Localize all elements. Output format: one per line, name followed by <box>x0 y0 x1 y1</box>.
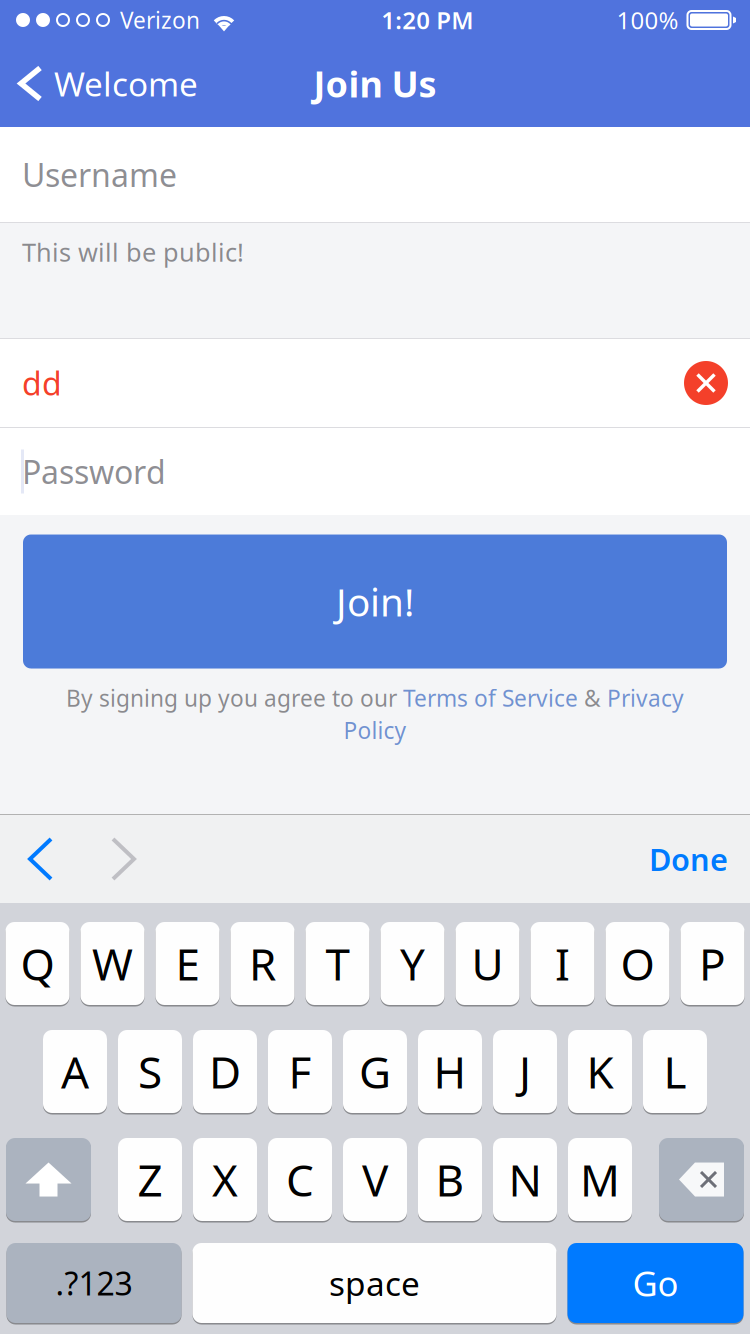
staticText: Password <box>22 450 166 493</box>
staticText: Go <box>632 1260 678 1306</box>
staticText: Z <box>137 1150 162 1209</box>
staticText: R <box>249 934 276 993</box>
staticText: Done <box>649 839 728 879</box>
button[interactable]: Clear text <box>684 361 728 405</box>
button[interactable]: Policy <box>343 715 406 745</box>
button[interactable]: Y <box>380 922 444 1005</box>
staticText: Terms of Service <box>403 683 578 713</box>
button[interactable]: I <box>530 922 594 1005</box>
button[interactable]: space <box>192 1243 556 1323</box>
staticText: Privacy <box>607 683 684 713</box>
staticText: X <box>212 1150 238 1209</box>
button[interactable]: U <box>455 922 519 1005</box>
staticText: Verizon <box>120 5 200 35</box>
button[interactable]: R <box>230 922 294 1005</box>
staticText: W <box>92 934 133 993</box>
staticText: .?123 <box>55 1262 132 1304</box>
button[interactable]: J <box>493 1030 557 1113</box>
staticText: J <box>519 1042 531 1101</box>
button[interactable]: G <box>343 1030 407 1113</box>
button[interactable]: P <box>680 922 744 1005</box>
staticText: U <box>471 934 503 993</box>
button[interactable]: Go <box>567 1243 743 1323</box>
button[interactable]: F <box>268 1030 332 1113</box>
button[interactable]: Previous field <box>0 815 92 903</box>
staticText: This will be public! <box>22 235 244 269</box>
staticText: A <box>61 1042 89 1101</box>
button[interactable]: .?123 <box>6 1243 181 1323</box>
staticText: O <box>620 934 654 993</box>
staticText: V <box>362 1150 388 1209</box>
button[interactable]: Terms of Service <box>403 683 578 713</box>
staticText: & <box>578 683 607 713</box>
button[interactable]: D <box>193 1030 257 1113</box>
staticText: K <box>586 1042 613 1101</box>
button[interactable]: Done <box>627 815 750 903</box>
button[interactable]: Z <box>118 1138 182 1221</box>
button[interactable]: Next field <box>92 815 155 903</box>
staticText: By signing up you agree to our <box>66 683 403 713</box>
staticText: Q <box>20 934 54 993</box>
staticText: N <box>508 1150 541 1209</box>
staticText: 1:20 PM <box>381 4 473 36</box>
button[interactable]: H <box>418 1030 482 1113</box>
staticText: F <box>288 1042 311 1101</box>
staticText: space <box>329 1261 420 1305</box>
button[interactable]: T <box>305 922 369 1005</box>
staticText: M <box>580 1150 620 1209</box>
button[interactable]: Shift <box>6 1138 91 1221</box>
staticText: B <box>435 1150 464 1209</box>
button[interactable]: B <box>418 1138 482 1221</box>
button[interactable]: V <box>343 1138 407 1221</box>
button[interactable]: M <box>568 1138 632 1221</box>
staticText: Join Us <box>313 60 436 107</box>
staticText: 100% <box>616 4 678 36</box>
staticText: Welcome <box>54 61 198 106</box>
button[interactable]: W <box>80 922 144 1005</box>
button[interactable]: S <box>118 1030 182 1113</box>
staticText: L <box>663 1042 686 1101</box>
staticText: T <box>325 934 349 993</box>
button[interactable]: X <box>193 1138 257 1221</box>
button[interactable]: Q <box>5 922 69 1005</box>
button[interactable]: O <box>605 922 669 1005</box>
staticText: S <box>138 1042 162 1101</box>
staticText: P <box>699 934 726 993</box>
staticText: H <box>433 1042 466 1101</box>
button[interactable]: L <box>643 1030 707 1113</box>
staticText: E <box>175 934 199 993</box>
staticText: G <box>359 1042 391 1101</box>
button[interactable]: Delete <box>659 1138 744 1221</box>
button[interactable]: N <box>493 1138 557 1221</box>
button[interactable]: K <box>568 1030 632 1113</box>
button[interactable]: E <box>155 922 219 1005</box>
staticText: Username <box>22 153 177 196</box>
staticText: dd <box>22 362 62 404</box>
staticText: D <box>209 1042 241 1101</box>
button[interactable]: Welcome <box>0 52 214 114</box>
button[interactable]: C <box>268 1138 332 1221</box>
staticText: C <box>286 1150 314 1209</box>
button[interactable]: Join! <box>22 534 727 669</box>
button[interactable]: A <box>43 1030 107 1113</box>
staticText: I <box>555 934 570 993</box>
staticText: Y <box>400 934 425 993</box>
staticText: Policy <box>343 715 406 745</box>
staticText: Join! <box>336 576 414 627</box>
